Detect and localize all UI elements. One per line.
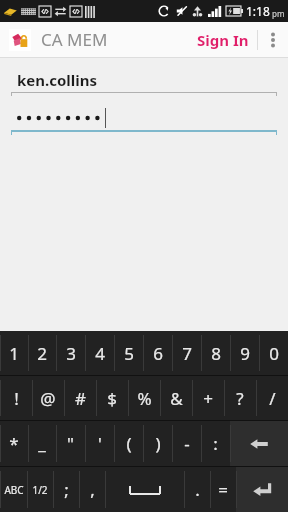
staticText: 4: [95, 342, 105, 365]
staticText: =: [218, 478, 228, 501]
staticText: 2: [37, 342, 47, 365]
button[interactable]: ken.collins: [11, 67, 277, 96]
button[interactable]: %: [128, 376, 160, 420]
staticText: 7: [182, 342, 192, 365]
button[interactable]: ': [85, 421, 114, 466]
staticText: ken.collins: [17, 70, 98, 90]
staticText: 9: [240, 342, 250, 365]
staticText: CA MEM: [41, 28, 108, 51]
button[interactable]: !: [0, 376, 32, 420]
button[interactable]: 6: [143, 331, 172, 375]
staticText: ABC: [4, 483, 24, 497]
button[interactable]: 1: [0, 331, 28, 375]
staticText: 6: [153, 342, 163, 365]
staticText: +: [203, 387, 213, 410]
button[interactable]: _: [28, 421, 56, 466]
staticText: :: [213, 432, 218, 455]
button[interactable]: 5: [114, 331, 143, 375]
staticText: #: [75, 387, 86, 410]
button[interactable]: More options: [258, 22, 288, 57]
button[interactable]: ): [143, 421, 172, 466]
staticText: .: [195, 478, 200, 501]
button[interactable]: =: [210, 467, 236, 512]
button[interactable]: 4: [85, 331, 114, 375]
button[interactable]: Backspace: [230, 421, 288, 466]
button[interactable]: ?: [224, 376, 256, 420]
button[interactable]: 2: [28, 331, 56, 375]
staticText: 1/2: [32, 483, 48, 497]
button[interactable]: -: [172, 421, 201, 466]
button[interactable]: &: [160, 376, 192, 420]
staticText: ?: [236, 387, 244, 410]
button[interactable]: ABC: [0, 467, 27, 512]
button[interactable]: .: [184, 467, 210, 512]
staticText: &: [170, 387, 183, 410]
staticText: $: [107, 387, 117, 410]
button[interactable]: Enter: [236, 467, 288, 512]
button[interactable]: 7: [172, 331, 201, 375]
staticText: _: [38, 432, 46, 455]
staticText: 0: [269, 342, 279, 365]
staticText: (: [126, 432, 132, 455]
button[interactable]: (: [114, 421, 143, 466]
button[interactable]: 1/2: [27, 467, 53, 512]
staticText: 1:18: [246, 3, 270, 19]
button[interactable]: App logo: [9, 29, 31, 51]
staticText: 3: [66, 342, 76, 365]
staticText: !: [14, 387, 19, 410]
button[interactable]: ,: [79, 467, 105, 512]
staticText: ;: [64, 478, 69, 501]
button[interactable]: 0: [259, 331, 288, 375]
staticText: ): [155, 432, 161, 455]
button[interactable]: 9: [230, 331, 259, 375]
button[interactable]: 8: [201, 331, 230, 375]
button[interactable]: Space: [105, 467, 184, 512]
staticText: 8: [211, 342, 221, 365]
staticText: @: [40, 387, 56, 410]
button[interactable]: [11, 105, 277, 135]
staticText: ': [98, 432, 102, 455]
button[interactable]: @: [32, 376, 64, 420]
button[interactable]: #: [64, 376, 96, 420]
staticText: 1: [9, 342, 19, 365]
button[interactable]: :: [201, 421, 230, 466]
button[interactable]: ;: [53, 467, 79, 512]
button[interactable]: $: [96, 376, 128, 420]
staticText: ": [67, 432, 74, 455]
staticText: *: [9, 432, 19, 455]
staticText: Sign In: [197, 30, 249, 50]
button[interactable]: ": [56, 421, 85, 466]
button[interactable]: *: [0, 421, 28, 466]
staticText: ,: [90, 478, 95, 501]
staticText: -: [184, 432, 190, 455]
staticText: /: [269, 387, 276, 410]
staticText: %: [137, 387, 152, 410]
button[interactable]: Sign In: [189, 22, 257, 57]
button[interactable]: /: [256, 376, 288, 420]
staticText: pm: [272, 8, 285, 19]
staticText: 5: [124, 342, 134, 365]
button[interactable]: 3: [56, 331, 85, 375]
button[interactable]: +: [192, 376, 224, 420]
